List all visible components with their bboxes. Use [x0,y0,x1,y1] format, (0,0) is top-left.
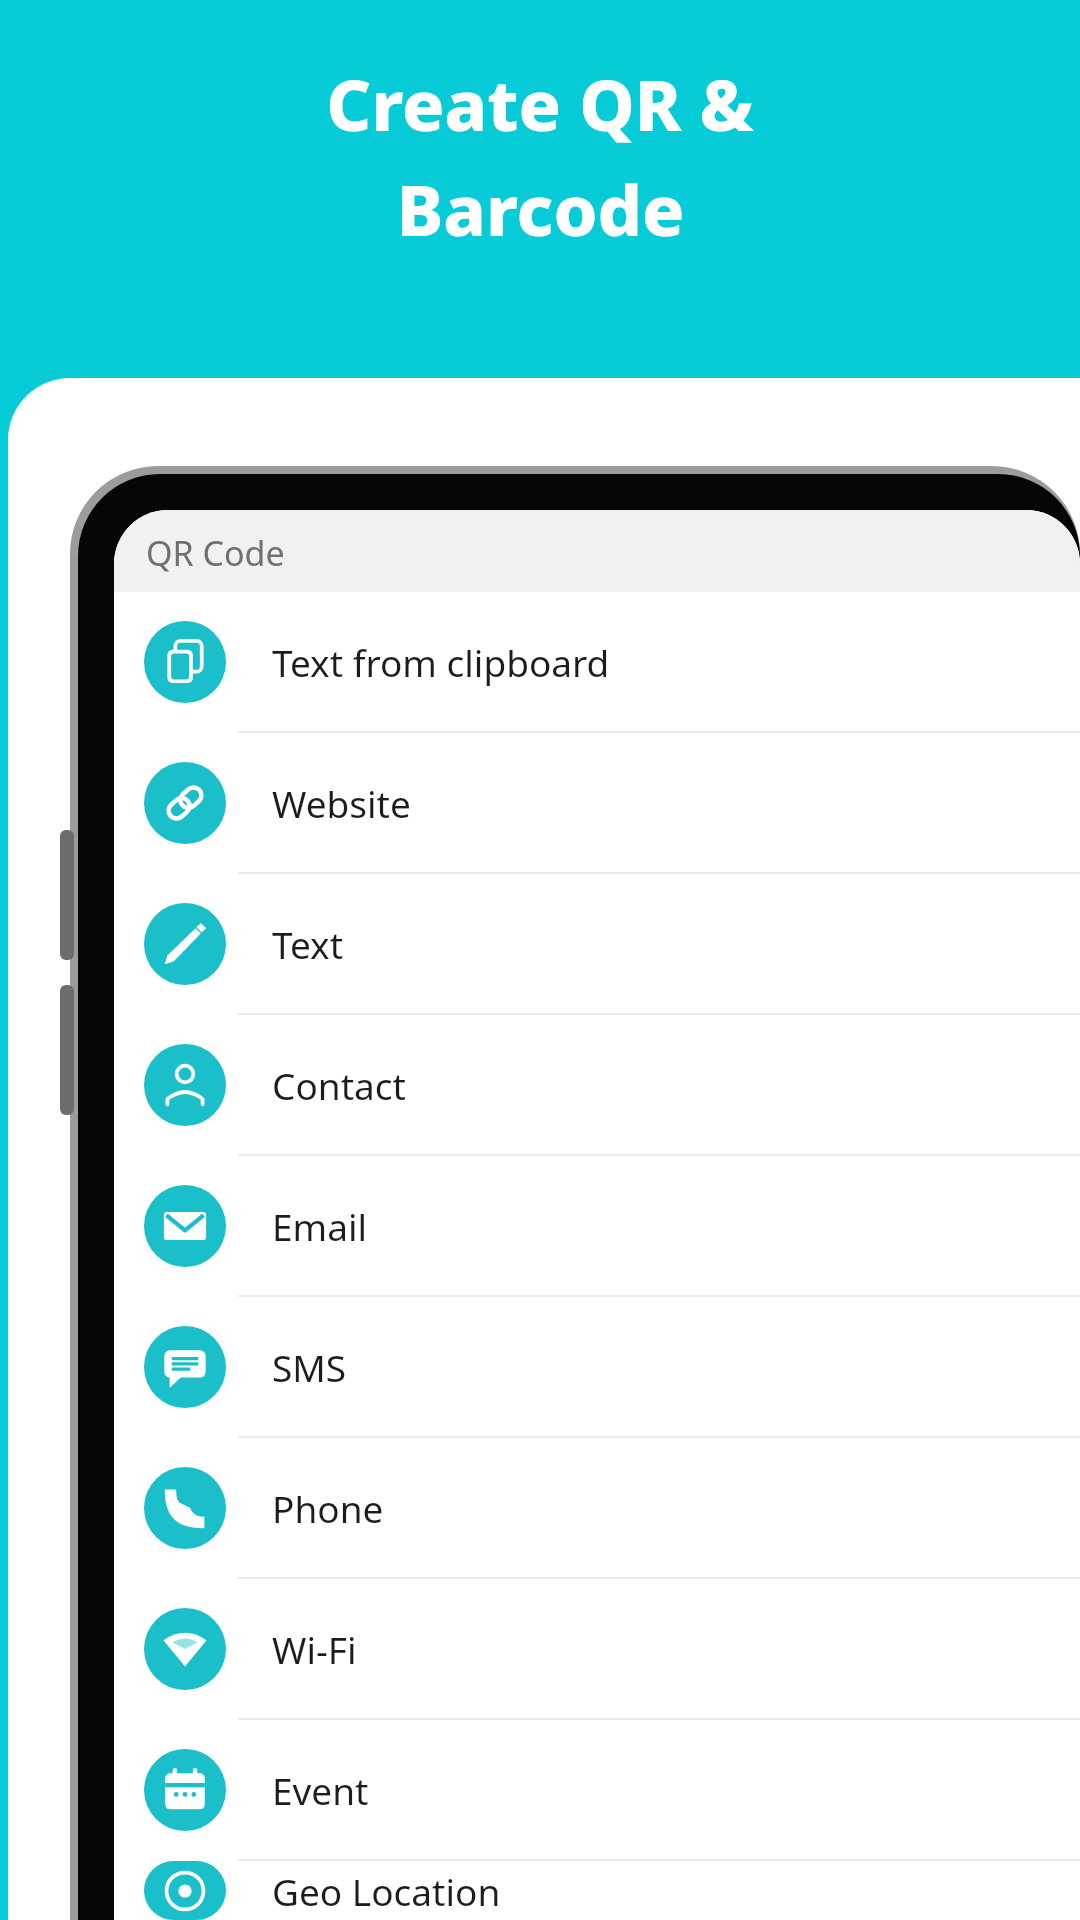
staticText: Barcode [396,161,685,256]
button[interactable]: Website [114,733,1080,872]
button[interactable]: Text [114,874,1080,1013]
staticText: Website [272,778,411,828]
other: Text [144,903,226,985]
other: Text from clipboard [144,621,226,703]
staticText: Event [272,1765,369,1815]
staticText: Create QR & [326,56,754,151]
staticText: Email [272,1201,368,1251]
staticText: Phone [272,1483,384,1533]
other: SMS [144,1326,226,1408]
other: Wi-Fi [144,1608,226,1690]
staticText: Contact [272,1060,406,1110]
other: Geo Location [144,1861,226,1920]
button[interactable]: Wi-Fi [114,1579,1080,1718]
button[interactable]: Contact [114,1015,1080,1154]
button[interactable]: Email [114,1156,1080,1295]
button[interactable]: Geo Location [114,1861,1080,1920]
other: Email [144,1185,226,1267]
staticText: SMS [272,1342,347,1392]
other: Website [144,762,226,844]
other: Event [144,1749,226,1831]
staticText: Text [272,919,344,969]
other: Phone [144,1467,226,1549]
staticText: Text from clipboard [272,637,610,687]
button[interactable]: SMS [114,1297,1080,1436]
staticText: QR Code [146,530,285,576]
button[interactable]: Text from clipboard [114,592,1080,731]
other: Contact [144,1044,226,1126]
staticText: Geo Location [272,1866,501,1916]
staticText: Wi-Fi [272,1624,357,1674]
button[interactable]: Phone [114,1438,1080,1577]
button[interactable]: Event [114,1720,1080,1859]
